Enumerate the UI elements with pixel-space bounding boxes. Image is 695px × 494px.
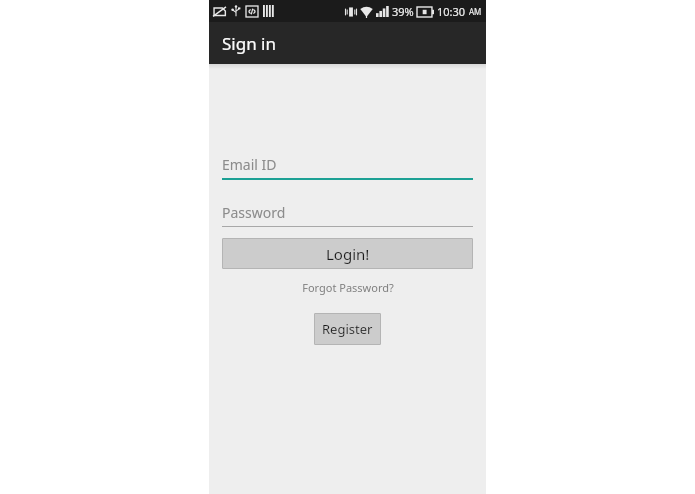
staticText: Sign in <box>222 32 276 55</box>
staticText: Password <box>222 203 286 222</box>
staticText: Register <box>322 320 373 338</box>
staticText: 39% <box>392 4 414 19</box>
button[interactable]: Login! <box>222 238 473 269</box>
button[interactable]: Forgot Password? <box>222 280 473 295</box>
button[interactable]: Email ID <box>222 153 473 180</box>
button[interactable]: Password <box>222 201 473 227</box>
staticText: Login! <box>326 244 370 264</box>
staticText: Email ID <box>222 155 277 174</box>
staticText: Forgot Password? <box>302 280 394 295</box>
staticText: AM <box>469 6 482 17</box>
staticText: 10:30 <box>437 4 466 19</box>
button[interactable]: Register <box>314 313 381 345</box>
